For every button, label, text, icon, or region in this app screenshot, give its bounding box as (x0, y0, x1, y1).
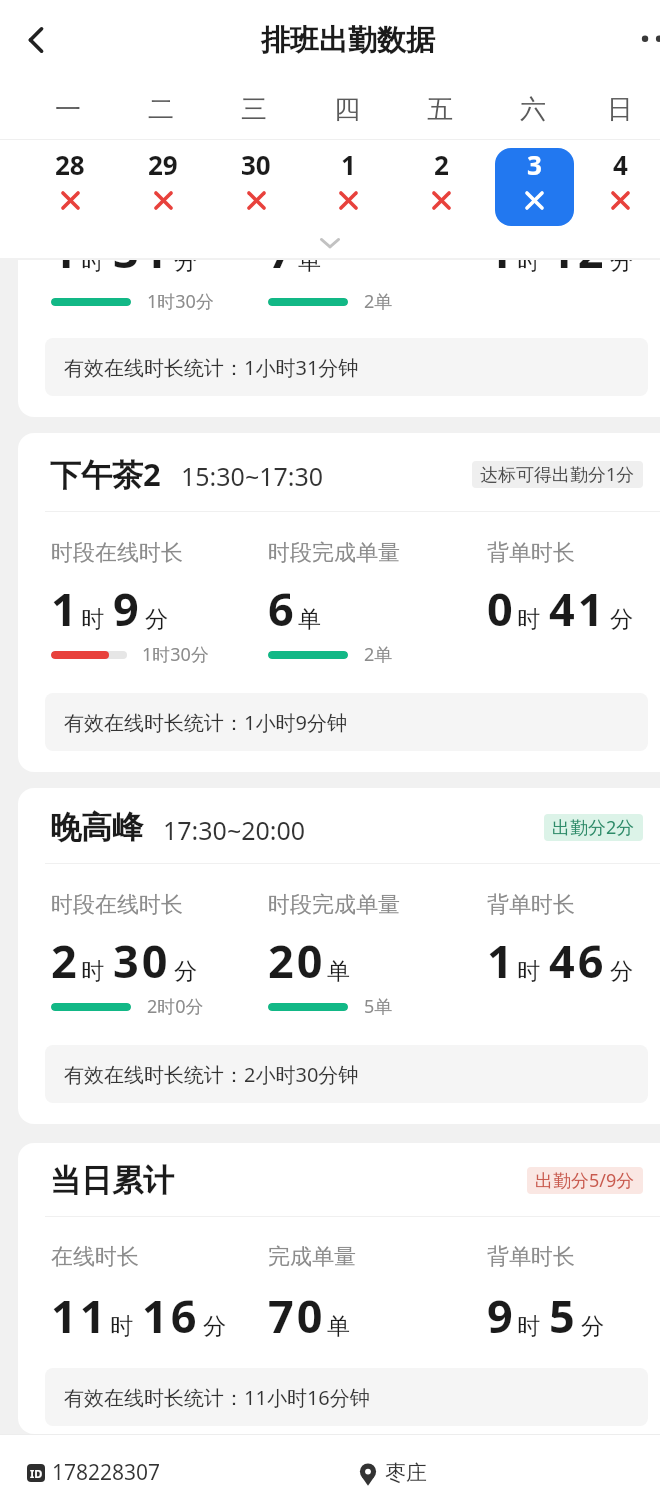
staticText: 3 (527, 148, 542, 182)
staticText: 20 (268, 930, 326, 991)
staticText: ID (30, 1466, 43, 1481)
staticText: 9 (487, 1285, 516, 1346)
button[interactable]: 1 (309, 148, 388, 226)
staticText: 2时0分 (147, 994, 204, 1019)
staticText: 0 (487, 578, 516, 639)
staticText: 分 (610, 260, 633, 276)
button[interactable]: 30 (216, 148, 295, 226)
staticText: 1 (51, 260, 80, 281)
button[interactable]: 晚高峰 (18, 788, 660, 1124)
staticText: 六 (520, 93, 546, 126)
staticText: 时 (81, 605, 104, 634)
staticText: 排班出勤数据 (261, 22, 435, 59)
staticText: 1时30分 (147, 289, 214, 314)
staticText: 四 (334, 93, 360, 126)
staticText: 背单时长 (487, 891, 575, 919)
staticText: 2 (51, 930, 80, 991)
staticText: 16 (142, 1285, 200, 1346)
staticText: 1 (487, 260, 516, 281)
button[interactable]: 3 (495, 148, 574, 226)
staticText: 28 (55, 148, 85, 182)
button[interactable]: 2 (402, 148, 481, 226)
staticText: 有效在线时长统计：2小时30分钟 (64, 1061, 359, 1088)
staticText: 时 (81, 957, 104, 986)
staticText: 有效在线时长统计：1小时31分钟 (64, 354, 359, 381)
staticText: 2单 (364, 642, 393, 667)
staticText: 70 (268, 1285, 326, 1346)
staticText: 5单 (364, 994, 393, 1019)
staticText: 4 (613, 148, 628, 182)
staticText: 15:30~17:30 (181, 459, 324, 493)
staticText: 分 (581, 1312, 604, 1341)
button[interactable]: Expand calendar (0, 227, 660, 258)
staticText: 178228307 (52, 1458, 161, 1487)
staticText: 时段在线时长 (51, 539, 183, 567)
staticText: 二 (148, 93, 174, 126)
staticText: 完成单量 (268, 1243, 356, 1271)
staticText: 时段在线时长 (51, 891, 183, 919)
staticText: 31 (113, 260, 171, 281)
staticText: 在线时长 (51, 1243, 139, 1271)
staticText: 2 (434, 148, 449, 182)
staticText: 6 (268, 578, 297, 639)
staticText: 时 (517, 957, 540, 986)
staticText: 下午茶2 (50, 453, 161, 495)
staticText: 1 (341, 148, 356, 182)
staticText: 分 (610, 957, 633, 986)
staticText: 时 (517, 605, 540, 634)
staticText: 分 (174, 260, 197, 276)
button[interactable]: More options (616, 18, 660, 62)
staticText: 46 (549, 930, 607, 991)
staticText: 时 (517, 1312, 540, 1341)
staticText: 出勤分5/9分 (535, 1168, 635, 1193)
staticText: 17:30~20:00 (163, 813, 306, 847)
staticText: 29 (148, 148, 178, 182)
button[interactable]: 29 (123, 148, 202, 226)
button[interactable]: 下午茶2 (18, 433, 660, 772)
button[interactable]: Back (10, 14, 62, 66)
staticText: 9 (113, 578, 142, 639)
staticText: 12 (549, 260, 607, 281)
staticText: 分 (203, 1312, 226, 1341)
button[interactable]: 4 (581, 148, 660, 226)
staticText: 时 (517, 260, 540, 276)
staticText: 时 (110, 1312, 133, 1341)
staticText: 2单 (364, 289, 393, 314)
staticText: 一 (55, 93, 81, 126)
staticText: 30 (241, 148, 271, 182)
staticText: 分 (174, 957, 197, 986)
staticText: 五 (427, 93, 453, 126)
staticText: 时段完成单量 (268, 891, 400, 919)
staticText: 30 (113, 930, 171, 991)
staticText: 时 (81, 260, 104, 276)
staticText: 1时30分 (142, 642, 209, 667)
staticText: 7 (268, 260, 297, 281)
staticText: 出勤分2分 (552, 815, 635, 840)
staticText: 时段完成单量 (268, 539, 400, 567)
staticText: 11 (51, 1285, 109, 1346)
button[interactable]: 1 (18, 260, 660, 417)
button[interactable]: 当日累计 (18, 1143, 660, 1434)
staticText: 当日累计 (50, 1161, 174, 1200)
staticText: 分 (145, 605, 168, 634)
staticText: 1 (51, 578, 80, 639)
staticText: 41 (549, 578, 607, 639)
staticText: 单 (298, 605, 321, 634)
staticText: 单 (327, 957, 350, 986)
button[interactable]: 28 (30, 148, 109, 226)
staticText: 分 (610, 605, 633, 634)
staticText: 有效在线时长统计：1小时9分钟 (64, 709, 347, 736)
staticText: 单 (327, 1312, 350, 1341)
staticText: 达标可得出勤分1分 (480, 462, 635, 487)
staticText: 1 (487, 930, 516, 991)
staticText: 5 (549, 1285, 578, 1346)
staticText: 背单时长 (487, 539, 575, 567)
staticText: 日 (607, 93, 633, 126)
staticText: 晚高峰 (50, 808, 143, 847)
staticText: 有效在线时长统计：11小时16分钟 (64, 1384, 370, 1411)
staticText: 背单时长 (487, 1243, 575, 1271)
staticText: 枣庄 (385, 1460, 427, 1486)
staticText: 三 (241, 93, 267, 126)
staticText: 单 (298, 260, 321, 276)
